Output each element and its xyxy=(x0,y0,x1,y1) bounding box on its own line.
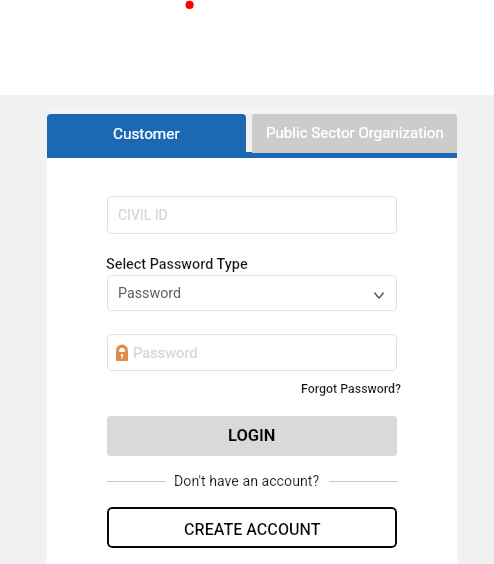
button[interactable]: Public Sector Organization xyxy=(252,114,457,153)
staticText: Password xyxy=(133,344,198,361)
button[interactable]: Password xyxy=(107,334,397,371)
staticText: Select Password Type xyxy=(106,256,248,273)
staticText: Public Sector Organization xyxy=(266,124,444,142)
button[interactable]: Password xyxy=(107,275,397,311)
staticText: Don't have an account? xyxy=(174,473,320,490)
staticText: Password xyxy=(118,285,182,302)
staticText: Forgot Password? xyxy=(301,381,402,396)
staticText: Customer xyxy=(113,125,180,143)
button[interactable]: CIVIL ID xyxy=(107,196,397,234)
button[interactable]: Customer xyxy=(47,114,246,158)
button[interactable]: LOGIN xyxy=(107,416,397,456)
staticText: CREATE ACCOUNT xyxy=(184,520,321,539)
staticText: CIVIL ID xyxy=(118,207,168,223)
button[interactable]: CREATE ACCOUNT xyxy=(107,507,397,548)
button[interactable]: Forgot Password? xyxy=(301,381,402,396)
staticText: LOGIN xyxy=(228,426,276,445)
other: Open password type list xyxy=(374,287,384,299)
